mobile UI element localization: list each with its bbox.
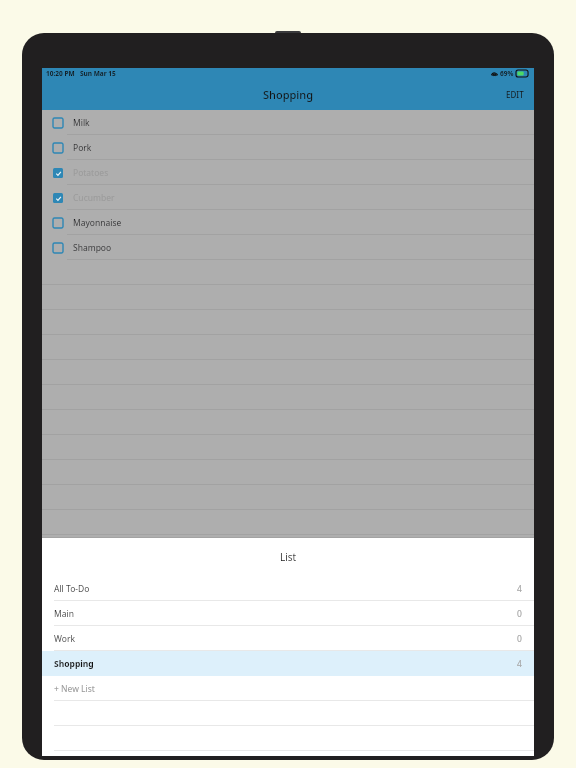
staticText: 4 [517,658,522,670]
staticText: Shampoo [73,242,112,254]
button[interactable]: Milk [42,110,534,135]
staticText: Main [54,608,74,620]
staticText: 4 [517,583,522,595]
staticText: Milk [73,117,90,129]
staticText: 0 [517,608,522,620]
staticText: 10:20 PM [46,69,75,78]
button[interactable]: Cucumber [42,185,534,210]
staticText: Cucumber [73,192,115,204]
staticText: Shopping [263,87,313,102]
staticText: Pork [73,142,92,154]
button[interactable]: Mayonnaise [42,210,534,235]
staticText: Potatoes [73,167,109,179]
staticText: 0 [517,633,522,645]
button[interactable]: All To-Do [42,576,534,601]
button[interactable]: Pork [42,135,534,160]
staticText: Sun Mar 15 [80,69,116,78]
staticText: List [280,550,297,564]
button[interactable]: Potatoes [42,160,534,185]
staticText: Shopping [54,658,94,670]
staticText: Work [54,633,75,645]
staticText: + New List [54,683,95,695]
staticText: 69% [500,69,514,78]
button[interactable]: Shampoo [42,235,534,260]
staticText: All To-Do [54,583,90,595]
button[interactable]: EDIT [496,79,534,110]
staticText: EDIT [506,89,524,100]
button[interactable]: Work [42,626,534,651]
staticText: Mayonnaise [73,217,122,229]
button[interactable]: Shopping [42,651,534,676]
button[interactable]: Main [42,601,534,626]
button[interactable]: + New List [42,676,534,701]
